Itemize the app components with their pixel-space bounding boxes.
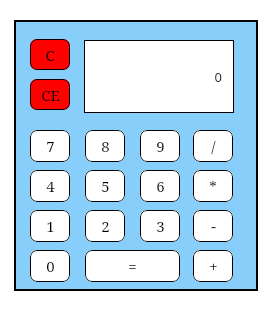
button[interactable]: 4: [30, 170, 70, 202]
button[interactable]: +: [193, 250, 233, 282]
staticText: =: [128, 256, 137, 276]
staticText: 0: [46, 256, 55, 276]
staticText: *: [209, 176, 217, 196]
staticText: 2: [101, 216, 110, 236]
button[interactable]: 6: [140, 170, 180, 202]
staticText: CE: [41, 85, 60, 105]
staticText: 5: [101, 176, 110, 196]
button[interactable]: 1: [30, 210, 70, 242]
button[interactable]: /: [193, 130, 233, 162]
staticText: 8: [101, 136, 110, 156]
staticText: 0: [214, 68, 222, 86]
button[interactable]: *: [193, 170, 233, 202]
button[interactable]: -: [193, 210, 233, 242]
button[interactable]: 3: [140, 210, 180, 242]
button[interactable]: 2: [85, 210, 125, 242]
button[interactable]: 5: [85, 170, 125, 202]
button[interactable]: 7: [30, 130, 70, 162]
button[interactable]: 8: [85, 130, 125, 162]
staticText: 6: [156, 176, 165, 196]
staticText: 1: [46, 216, 55, 236]
staticText: /: [211, 136, 216, 156]
staticText: C: [45, 45, 55, 65]
staticText: 4: [46, 176, 55, 196]
staticText: -: [211, 216, 216, 236]
staticText: 7: [46, 136, 55, 156]
staticText: 3: [156, 216, 165, 236]
button[interactable]: CE: [30, 79, 70, 110]
button[interactable]: 9: [140, 130, 180, 162]
button[interactable]: =: [85, 250, 180, 282]
button[interactable]: C: [30, 39, 70, 70]
staticText: +: [209, 256, 218, 276]
staticText: 9: [156, 136, 165, 156]
button[interactable]: 0: [30, 250, 70, 282]
